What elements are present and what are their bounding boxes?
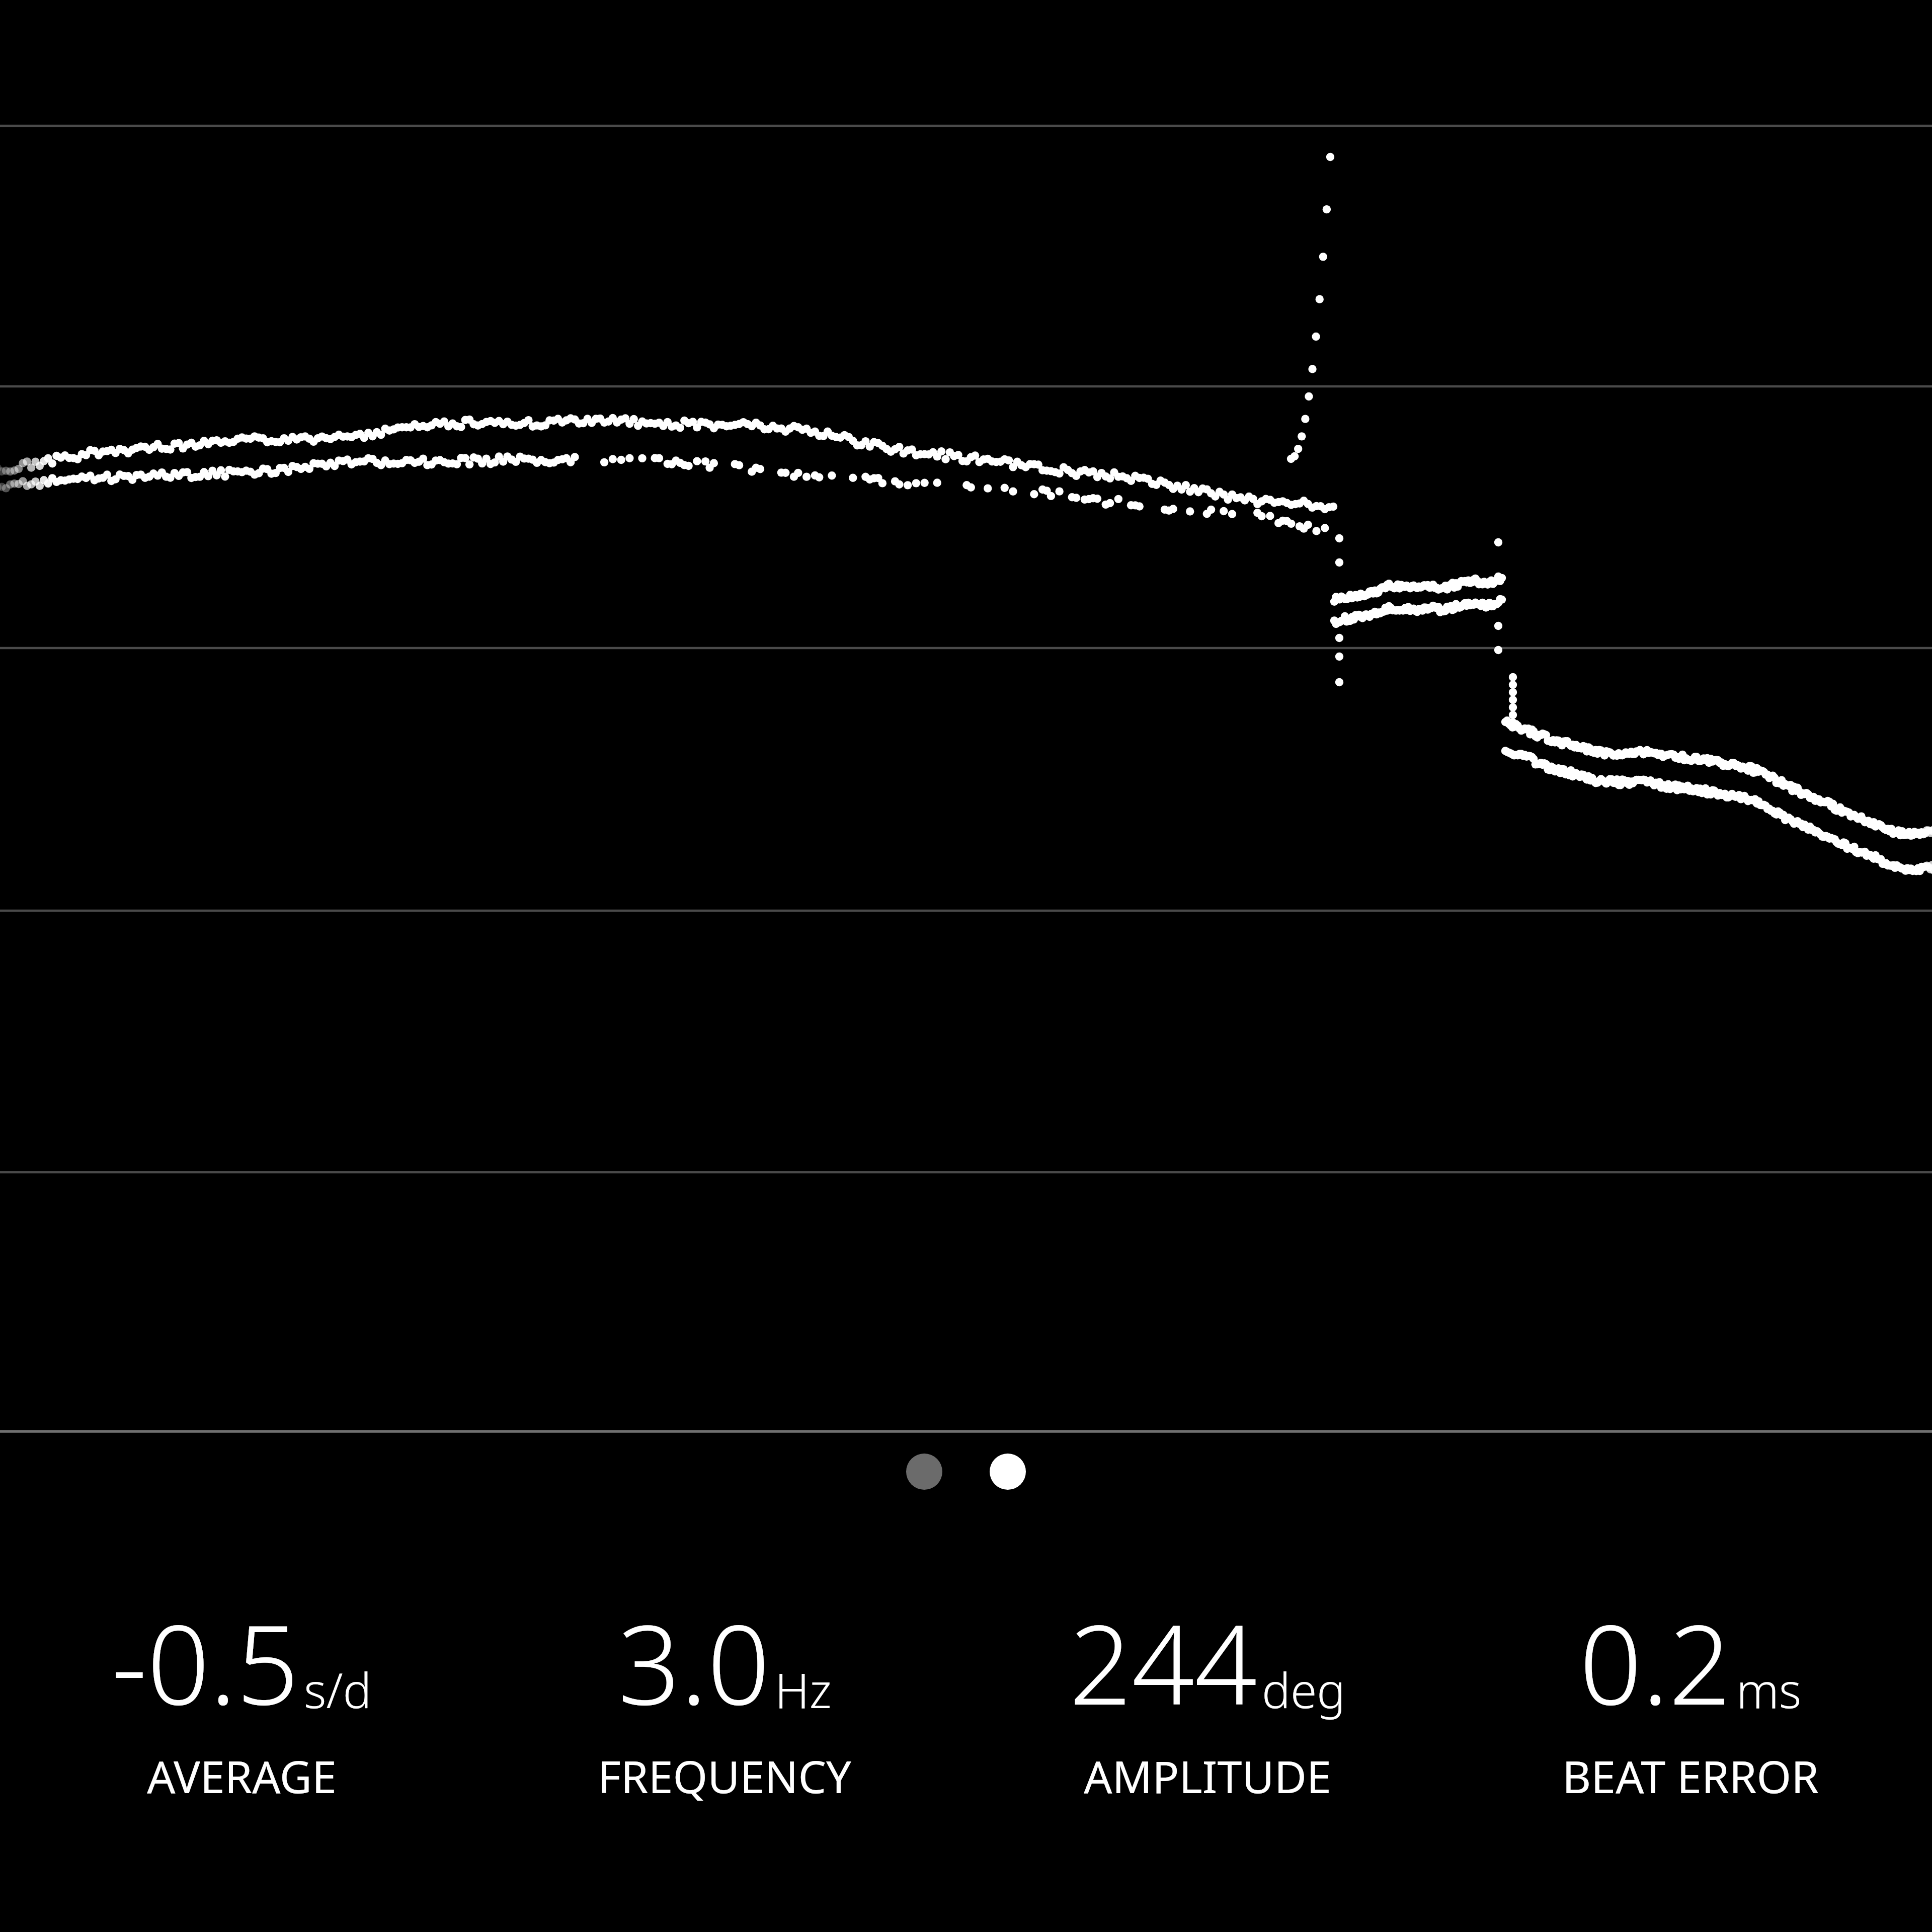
button[interactable]: Page 1 — [892, 1471, 957, 1536]
button[interactable]: Page 2, selected — [975, 1471, 1040, 1536]
staticText: deg — [1262, 1657, 1346, 1722]
staticText: AMPLITUDE — [1084, 1746, 1331, 1806]
staticText: 3.0 — [618, 1587, 770, 1737]
button[interactable]: 3.0 — [483, 1587, 966, 1806]
staticText: BEAT ERROR — [1562, 1746, 1819, 1806]
button[interactable]: 244 — [966, 1587, 1449, 1806]
staticText: 0.2 — [1579, 1587, 1732, 1737]
staticText: AVERAGE — [147, 1746, 337, 1806]
staticText: 244 — [1069, 1587, 1257, 1737]
staticText: ms — [1736, 1657, 1802, 1722]
staticText: FREQUENCY — [598, 1746, 851, 1806]
staticText: -0.5 — [112, 1587, 299, 1737]
staticText: Hz — [775, 1657, 832, 1722]
button[interactable]: -0.5 — [0, 1587, 483, 1806]
button[interactable]: 0.2 — [1449, 1587, 1932, 1806]
staticText: s/d — [304, 1657, 372, 1722]
